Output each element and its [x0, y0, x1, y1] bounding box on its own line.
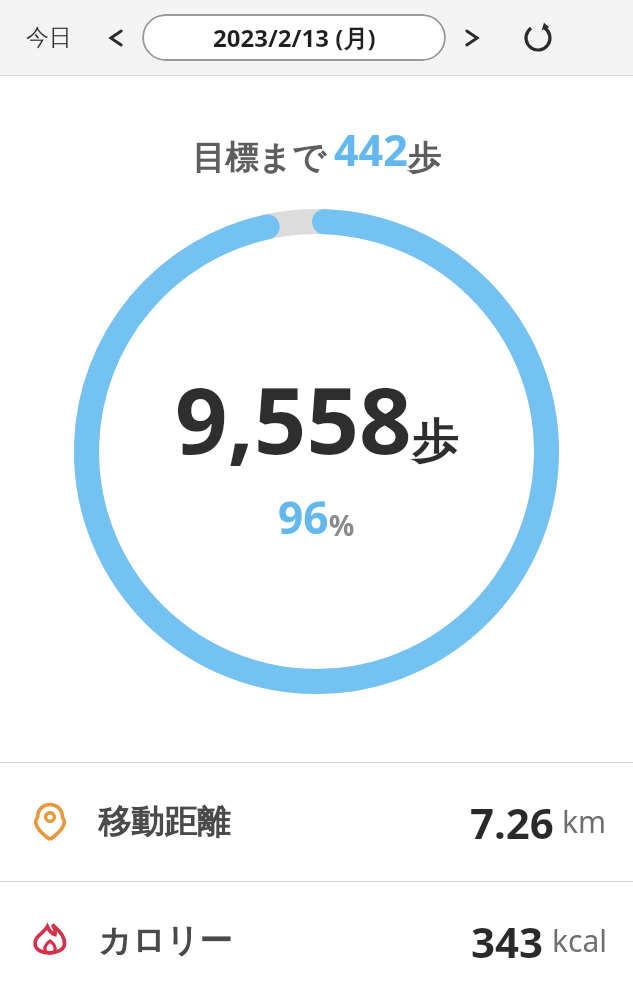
staticText: 9,558 [175, 356, 412, 481]
other: Calories [26, 917, 74, 965]
button[interactable]: Refresh [512, 12, 564, 64]
staticText: 目標まで [192, 137, 326, 179]
button[interactable]: 2023/2/13 (月) [142, 14, 446, 61]
staticText: 歩 [412, 413, 458, 471]
staticText: カロリー [98, 920, 233, 962]
button[interactable]: Next day [450, 16, 494, 60]
button[interactable]: Calories [0, 882, 633, 1000]
staticText: 移動距離 [98, 801, 230, 843]
staticText: km [562, 801, 607, 842]
staticText: 歩 [408, 137, 441, 179]
staticText: 343 [471, 913, 544, 970]
staticText: kcal [552, 920, 607, 961]
other: Distance [26, 798, 74, 846]
staticText: 442 [334, 120, 408, 179]
button[interactable]: Previous day [94, 16, 138, 60]
staticText: 今日 [26, 23, 72, 52]
staticText: 96 [278, 487, 329, 547]
staticText: 7.26 [470, 794, 554, 851]
staticText: 2023/2/13 (月) [213, 21, 376, 54]
button[interactable]: Distance [0, 763, 633, 881]
button[interactable]: 今日 [18, 15, 80, 60]
staticText: % [329, 506, 355, 544]
